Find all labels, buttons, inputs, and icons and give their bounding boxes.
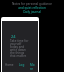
staticText: Daily journal <box>0 10 64 14</box>
button[interactable]: 24 <box>1 17 39 72</box>
staticText: More <box>30 63 35 71</box>
staticText: Log <box>19 63 25 67</box>
staticText: Home <box>5 63 14 67</box>
staticText: and quiet reflection <box>0 6 64 10</box>
staticText: Take time for yourself today and write d… <box>10 39 30 58</box>
staticText: Notes for personal guidance <box>0 2 64 6</box>
staticText: 24 <box>11 34 16 39</box>
